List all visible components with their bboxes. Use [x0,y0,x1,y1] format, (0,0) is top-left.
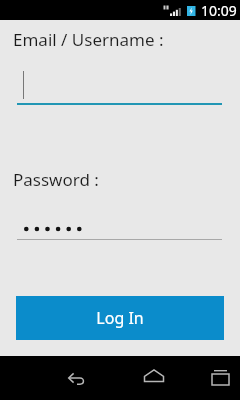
button[interactable]: Log In [16,296,224,340]
button[interactable]: Email or username input [17,66,222,105]
button[interactable]: Password input [17,210,222,240]
button[interactable]: Recent apps [210,356,240,400]
staticText: Email / Username : [13,28,164,51]
staticText: Password : [13,168,99,191]
button[interactable]: Home [135,356,175,400]
staticText: 10:09 [201,1,237,20]
button[interactable]: Back [58,356,98,400]
staticText: Log In [96,307,144,329]
